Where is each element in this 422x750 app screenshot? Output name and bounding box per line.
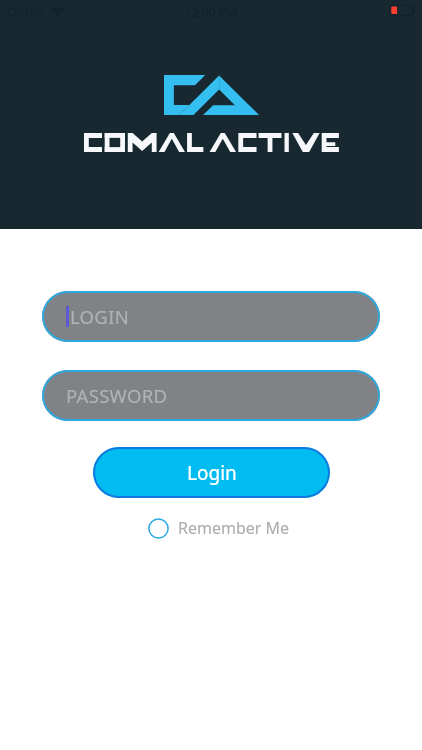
staticText: LOGIN <box>70 304 130 329</box>
button[interactable]: Remember Me <box>148 517 290 539</box>
staticText: Remember Me <box>178 517 290 539</box>
staticText: Login <box>187 460 237 486</box>
button[interactable]: PASSWORD <box>42 370 380 421</box>
button[interactable]: Login <box>93 447 330 498</box>
staticText: PASSWORD <box>66 383 168 408</box>
button[interactable]: LOGIN <box>42 291 380 342</box>
